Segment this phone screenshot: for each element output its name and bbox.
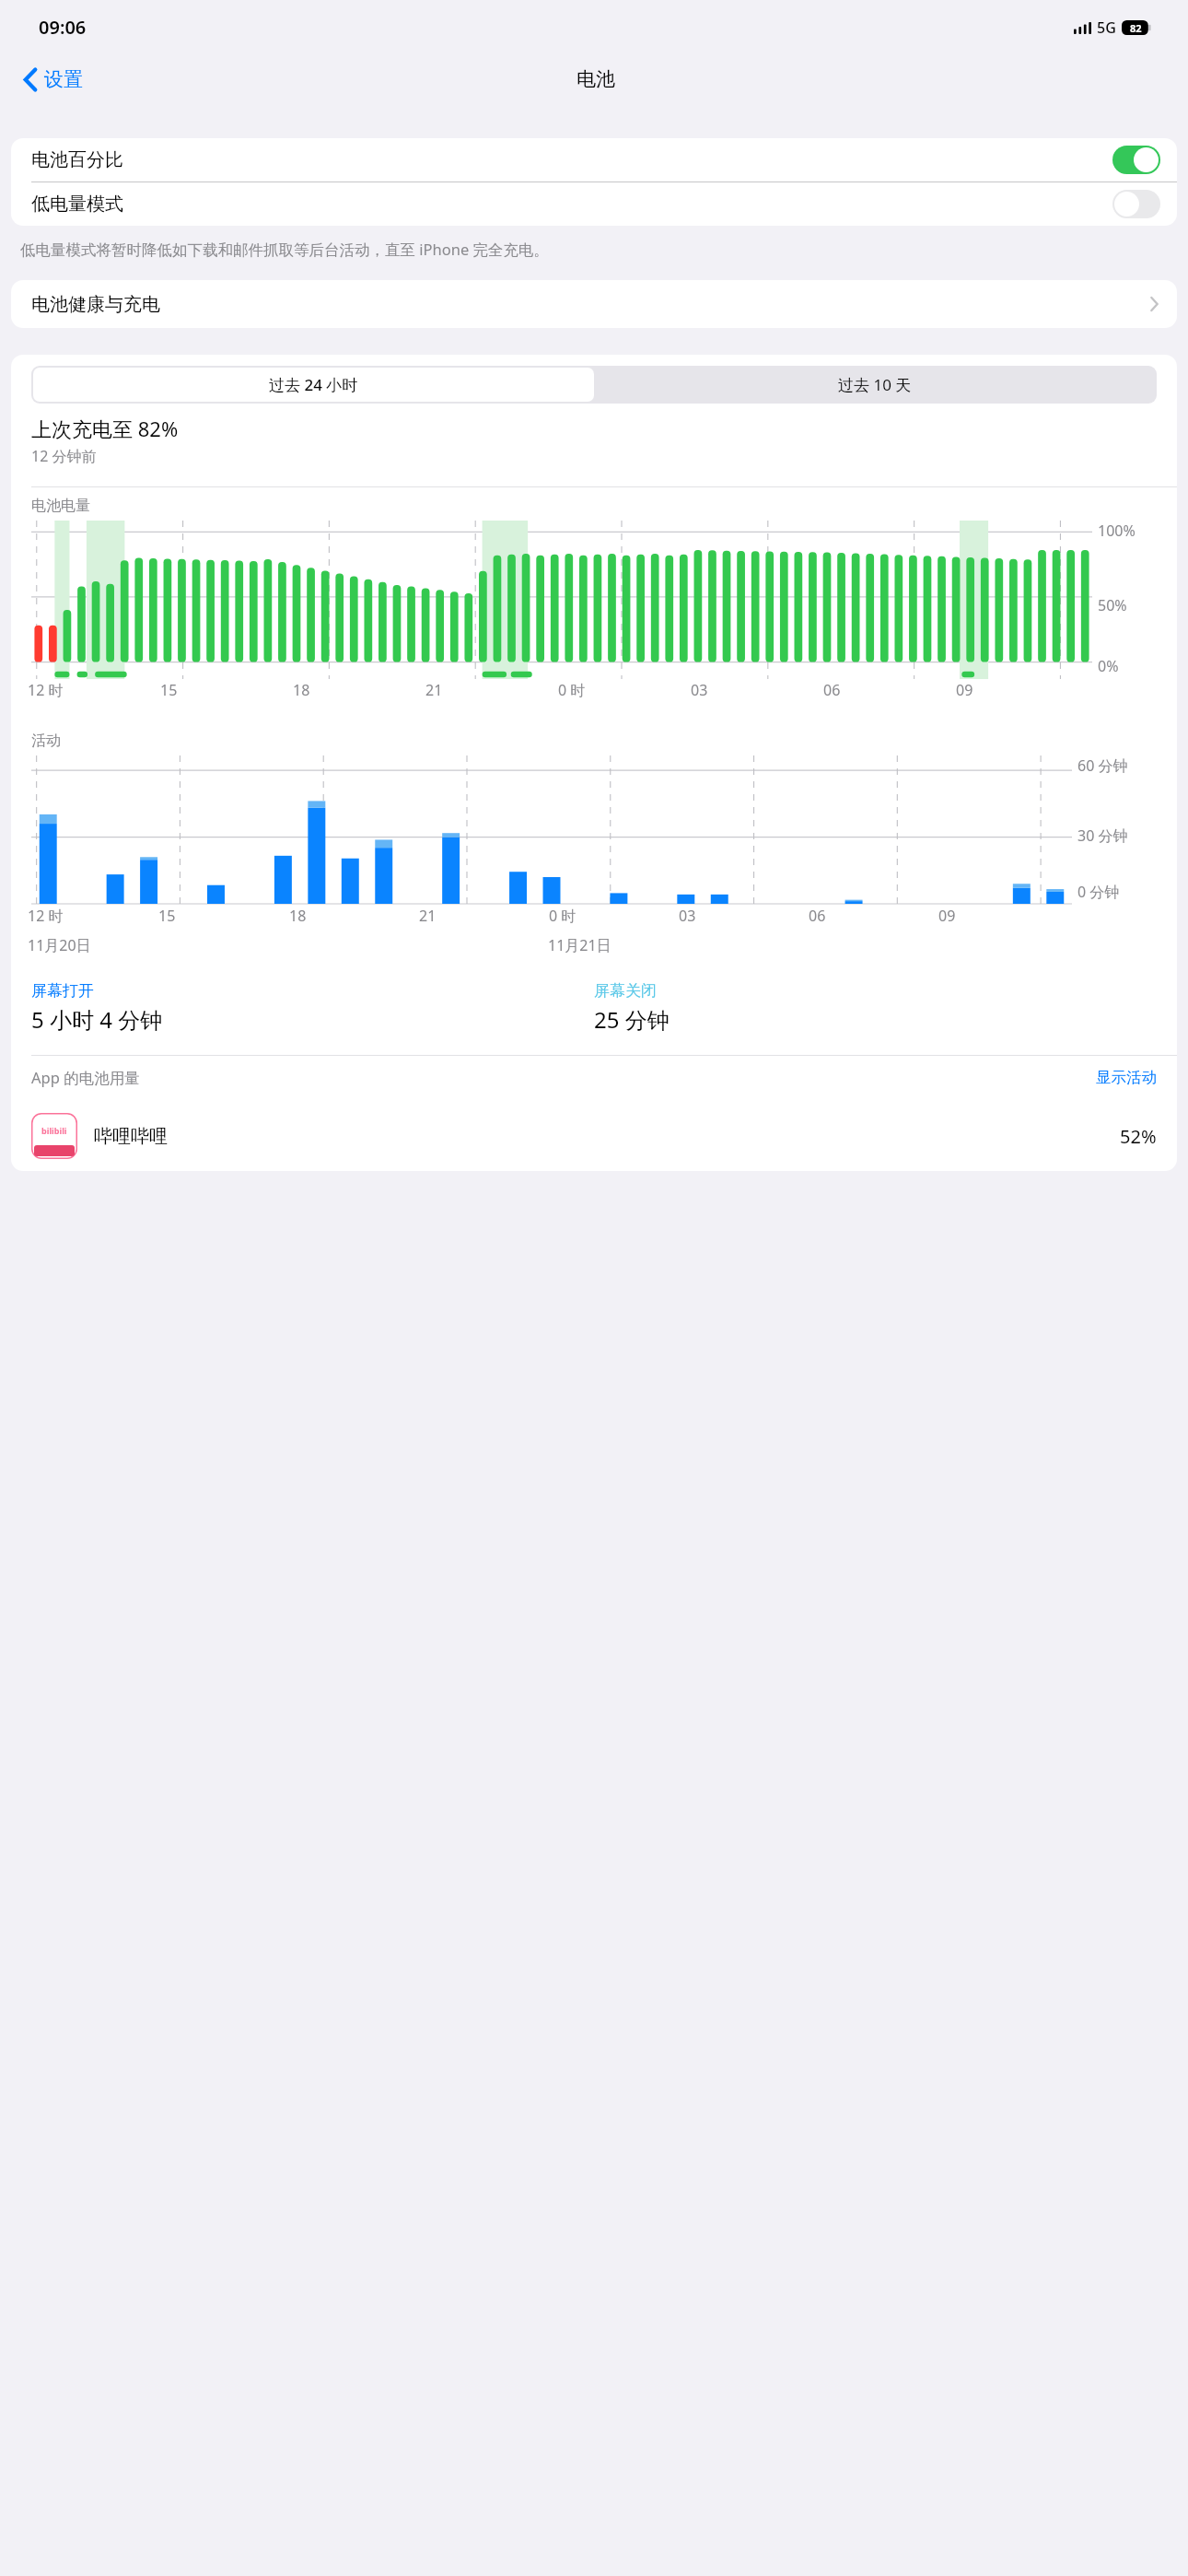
staticText: 100% (1098, 521, 1136, 541)
staticText: 活动 (31, 732, 61, 750)
staticText: 显示活动 (1096, 1068, 1157, 1087)
staticText: 15 (158, 906, 176, 926)
staticText: 09 (938, 906, 956, 926)
staticText: 5 小时 4 分钟 (31, 1004, 163, 1035)
staticText: 0 时 (558, 680, 586, 700)
button[interactable]: Toggle on (1112, 146, 1160, 174)
staticText: 11月20日 (28, 935, 91, 955)
staticText: 设置 (44, 67, 83, 91)
button[interactable]: 电池百分比 (11, 138, 1177, 181)
staticText: 03 (691, 680, 708, 700)
staticText: 上次充电至 82% (31, 415, 179, 442)
staticText: 12 分钟前 (31, 446, 97, 466)
staticText: 屏幕打开 (31, 981, 94, 1001)
staticText: 50% (1098, 595, 1127, 615)
staticText: 0% (1098, 656, 1119, 676)
staticText: 82 (1130, 21, 1142, 35)
staticText: 过去 24 小时 (269, 374, 358, 395)
button[interactable]: 过去 24 小时 (33, 368, 594, 402)
staticText: 0 分钟 (1077, 882, 1120, 902)
staticText: 09:06 (39, 15, 87, 40)
staticText: bilibili (41, 1125, 67, 1136)
staticText: 电池电量 (31, 497, 90, 515)
staticText: 06 (823, 680, 841, 700)
staticText: 0 时 (549, 906, 577, 926)
staticText: 06 (809, 906, 826, 926)
button[interactable]: 设置 (18, 62, 88, 97)
button[interactable]: 低电量模式 (11, 182, 1177, 226)
staticText: 60 分钟 (1077, 755, 1128, 776)
staticText: 5G (1097, 18, 1116, 38)
staticText: 电池百分比 (31, 148, 123, 171)
staticText: 30 分钟 (1077, 825, 1128, 846)
staticText: 18 (293, 680, 310, 700)
staticText: 11月21日 (548, 935, 611, 955)
staticText: 18 (289, 906, 307, 926)
staticText: App 的电池用量 (31, 1067, 140, 1088)
staticText: 低电量模式 (31, 193, 123, 216)
staticText: 电池 (577, 67, 615, 91)
staticText: 哔哩哔哩 (94, 1125, 168, 1148)
staticText: 21 (419, 906, 437, 926)
staticText: 15 (160, 680, 178, 700)
staticText: 12 时 (28, 906, 64, 926)
button[interactable]: 过去 10 天 (594, 368, 1155, 402)
button[interactable]: Toggle off (1112, 190, 1160, 218)
staticText: 低电量模式将暂时降低如下载和邮件抓取等后台活动，直至 iPhone 完全充电。 (20, 239, 1168, 260)
staticText: 过去 10 天 (838, 374, 912, 395)
staticText: 21 (425, 680, 443, 700)
staticText: 25 分钟 (594, 1004, 670, 1035)
staticText: 屏幕关闭 (594, 981, 657, 1001)
staticText: 09 (956, 680, 973, 700)
button[interactable]: bilibili (11, 1101, 1177, 1171)
staticText: 52% (1120, 1124, 1157, 1149)
staticText: 03 (679, 906, 696, 926)
button[interactable]: 显示活动 (1096, 1068, 1157, 1087)
button[interactable]: 电池健康与充电 (11, 280, 1177, 328)
staticText: 电池健康与充电 (31, 293, 160, 316)
staticText: 12 时 (28, 680, 64, 700)
